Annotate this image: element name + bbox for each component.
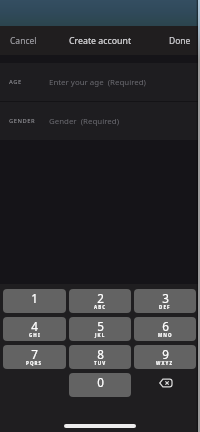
button[interactable]: Cancel [10, 26, 37, 55]
staticText: 3 [162, 290, 169, 306]
button[interactable]: 5 [69, 317, 131, 341]
staticText: TUV [94, 360, 107, 366]
staticText: GENDER [9, 117, 36, 125]
staticText: 7 [31, 346, 38, 362]
staticText: GHI [29, 332, 41, 338]
button[interactable]: 1 [3, 289, 66, 313]
staticText: 9 [162, 346, 169, 362]
button[interactable]: GENDER [0, 102, 200, 140]
staticText: 1 [31, 290, 38, 306]
staticText: Done [169, 35, 191, 47]
staticText: WXYZ [156, 360, 174, 366]
staticText: JKL [95, 332, 106, 338]
staticText: AGE [9, 78, 22, 86]
staticText: Gender (Required) [49, 116, 119, 127]
button[interactable]: 0 [69, 373, 131, 397]
button[interactable]: 6 [134, 317, 196, 341]
button[interactable]: 8 [69, 345, 131, 369]
staticText: DEF [159, 304, 171, 310]
staticText: PQRS [26, 360, 43, 366]
button[interactable]: 2 [69, 289, 131, 313]
staticText: 0 [97, 374, 104, 390]
button[interactable]: Delete [134, 373, 196, 397]
staticText: Cancel [10, 35, 37, 47]
staticText: Enter your age (Required) [49, 77, 146, 88]
staticText: 8 [97, 346, 104, 362]
staticText: 6 [162, 318, 169, 334]
staticText: MNO [158, 332, 173, 338]
button[interactable]: Done [169, 26, 191, 55]
button[interactable]: AGE [0, 63, 200, 101]
staticText: Create account [69, 35, 132, 47]
button[interactable]: 7 [3, 345, 66, 369]
button[interactable]: 3 [134, 289, 196, 313]
button[interactable]: 9 [134, 345, 196, 369]
button[interactable]: 4 [3, 317, 66, 341]
staticText: 4 [31, 318, 38, 334]
staticText: ABC [94, 304, 107, 310]
staticText: 5 [97, 318, 104, 334]
staticText: 2 [97, 290, 104, 306]
